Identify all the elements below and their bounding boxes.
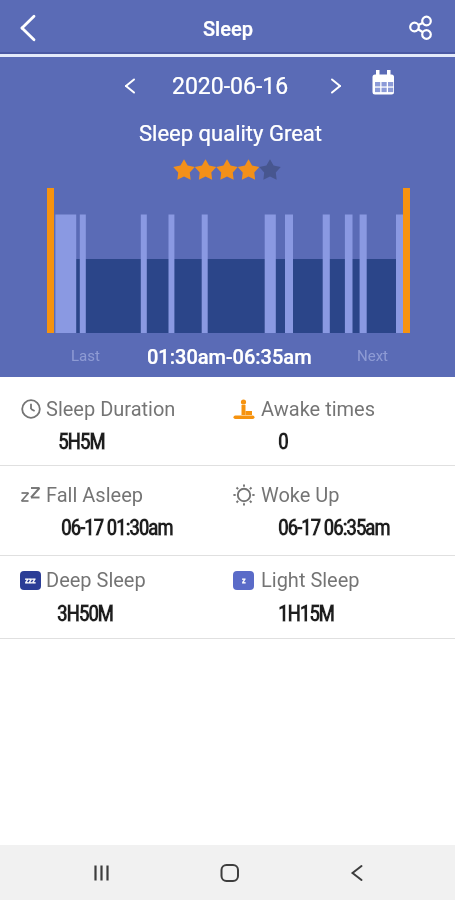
- staticText: Awake times: [261, 397, 376, 420]
- button[interactable]: [330, 845, 385, 900]
- staticText: Next: [357, 347, 389, 365]
- staticText: 3H50M: [57, 601, 113, 627]
- staticText: z: [242, 576, 246, 585]
- staticText: 5H5M: [58, 429, 105, 455]
- staticText: Fall Asleep: [46, 483, 143, 506]
- staticText: Sleep Duration: [46, 397, 176, 420]
- button[interactable]: [76, 845, 131, 900]
- button[interactable]: [363, 69, 403, 103]
- staticText: Light Sleep: [261, 568, 360, 591]
- staticText: 0: [278, 429, 288, 455]
- staticText: Last: [71, 347, 100, 365]
- staticText: 01:30am-06:35am: [147, 345, 312, 368]
- staticText: 06-17 01:30am: [61, 515, 173, 541]
- staticText: Woke Up: [261, 483, 340, 506]
- button[interactable]: Last: [55, 339, 115, 373]
- staticText: Sleep quality Great: [139, 121, 322, 147]
- button[interactable]: Next: [343, 339, 403, 373]
- staticText: Deep Sleep: [46, 568, 146, 591]
- staticText: zzz: [25, 576, 36, 585]
- button[interactable]: 2020-06-16: [162, 69, 299, 103]
- button[interactable]: [316, 69, 356, 103]
- staticText: 06-17 06:35am: [278, 515, 390, 541]
- staticText: 1H15M: [278, 601, 334, 627]
- button[interactable]: [110, 69, 150, 103]
- button[interactable]: [399, 0, 455, 56]
- staticText: 2020-06-16: [172, 73, 289, 100]
- button[interactable]: [202, 845, 257, 900]
- button[interactable]: [0, 0, 56, 56]
- staticText: Sleep: [203, 17, 253, 40]
